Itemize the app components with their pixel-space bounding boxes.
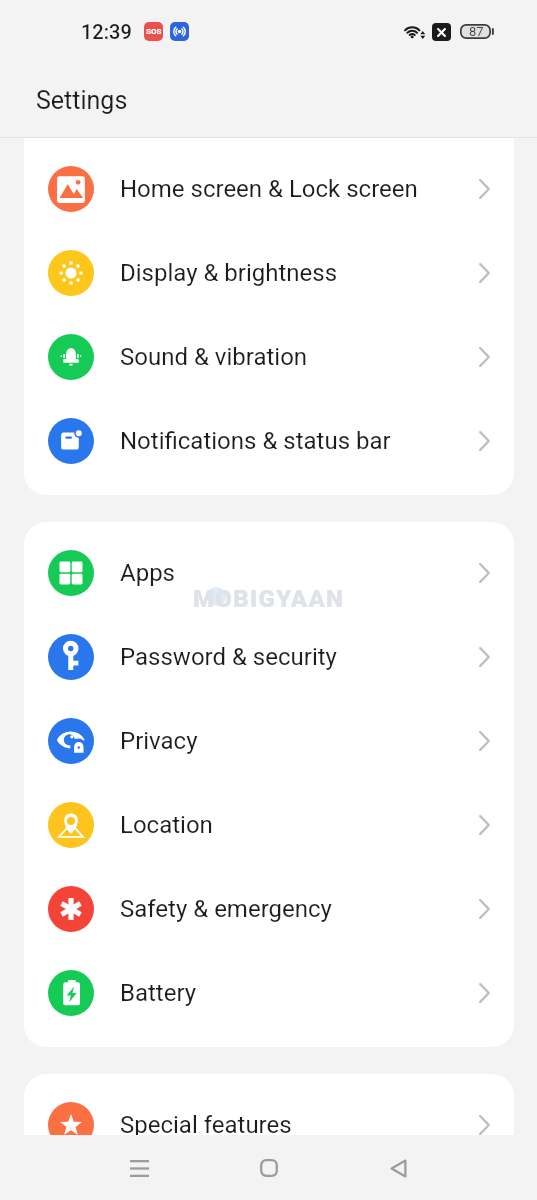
button[interactable]: Location (24, 783, 514, 867)
staticText: Safety & emergency (120, 895, 332, 923)
button[interactable]: Privacy (24, 699, 514, 783)
staticText: Sound & vibration (120, 343, 308, 371)
staticText: Settings (36, 86, 128, 115)
button[interactable]: Home screen & Lock screen (24, 147, 514, 231)
staticText: SOS (146, 27, 162, 36)
staticText: Privacy (120, 727, 198, 755)
staticText: MOBIGYAAN (193, 585, 345, 613)
staticText: Display & brightness (120, 259, 338, 287)
button[interactable]: Battery (24, 951, 514, 1035)
button[interactable]: Notifications & status bar (24, 399, 514, 483)
staticText: Notifications & status bar (120, 427, 391, 455)
button[interactable]: Special features (24, 1083, 514, 1167)
staticText: Password & security (120, 643, 337, 671)
button[interactable]: Sound & vibration (24, 315, 514, 399)
button[interactable]: Password & security (24, 615, 514, 699)
button[interactable]: Safety & emergency (24, 867, 514, 951)
button[interactable]: Home (245, 1144, 293, 1192)
staticText: 87 (469, 24, 484, 39)
staticText: Special features (120, 1111, 292, 1139)
button[interactable]: Back (374, 1144, 422, 1192)
staticText: Home screen & Lock screen (120, 175, 418, 203)
staticText: Battery (120, 979, 197, 1007)
staticText: Location (120, 811, 213, 839)
button[interactable]: Recent apps (115, 1144, 163, 1192)
staticText: Apps (120, 559, 175, 587)
staticText: 12:39 (81, 20, 132, 43)
button[interactable]: Apps (24, 531, 514, 615)
button[interactable]: Display & brightness (24, 231, 514, 315)
